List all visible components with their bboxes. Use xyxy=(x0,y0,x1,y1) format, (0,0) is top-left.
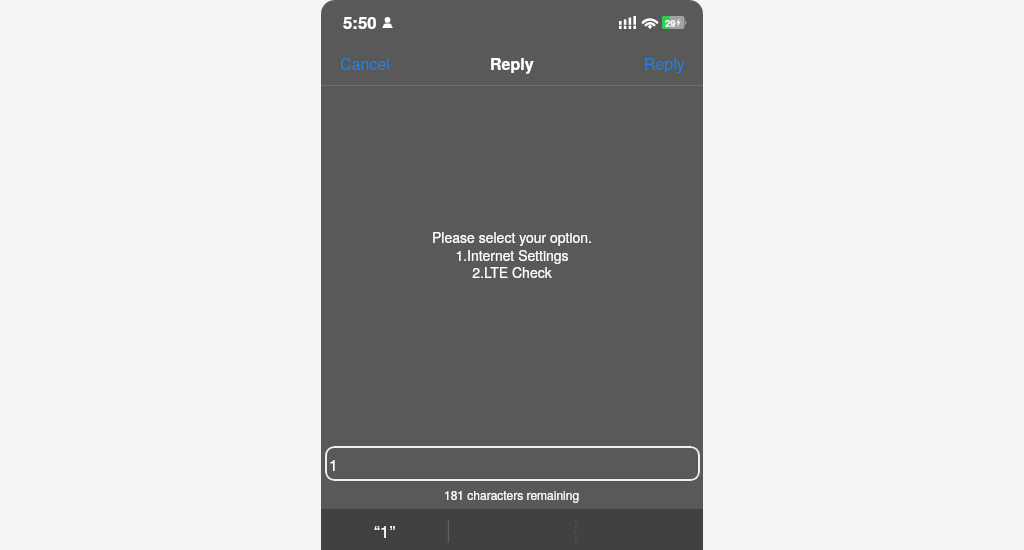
button[interactable]: 1 xyxy=(325,446,700,481)
staticText: 5:50 xyxy=(343,10,377,34)
button[interactable]: Cancel xyxy=(321,43,409,83)
staticText: Reply xyxy=(644,52,685,75)
other: Wi-Fi xyxy=(642,17,658,29)
staticText: 181 characters remaining xyxy=(444,486,580,503)
button[interactable]: Reply xyxy=(626,43,703,83)
staticText: Reply xyxy=(490,52,534,75)
other: Battery 29 percent, charging xyxy=(662,16,687,29)
staticText: 1 xyxy=(329,453,338,475)
button[interactable]: “1” xyxy=(321,509,449,550)
staticText: 29 xyxy=(665,16,676,29)
other: Mobile signal xyxy=(619,16,636,29)
staticText: Cancel xyxy=(340,52,390,75)
staticText: Please select your option. 1.Internet Se… xyxy=(321,227,703,282)
other: Account xyxy=(382,17,393,28)
staticText: “1” xyxy=(374,518,396,543)
